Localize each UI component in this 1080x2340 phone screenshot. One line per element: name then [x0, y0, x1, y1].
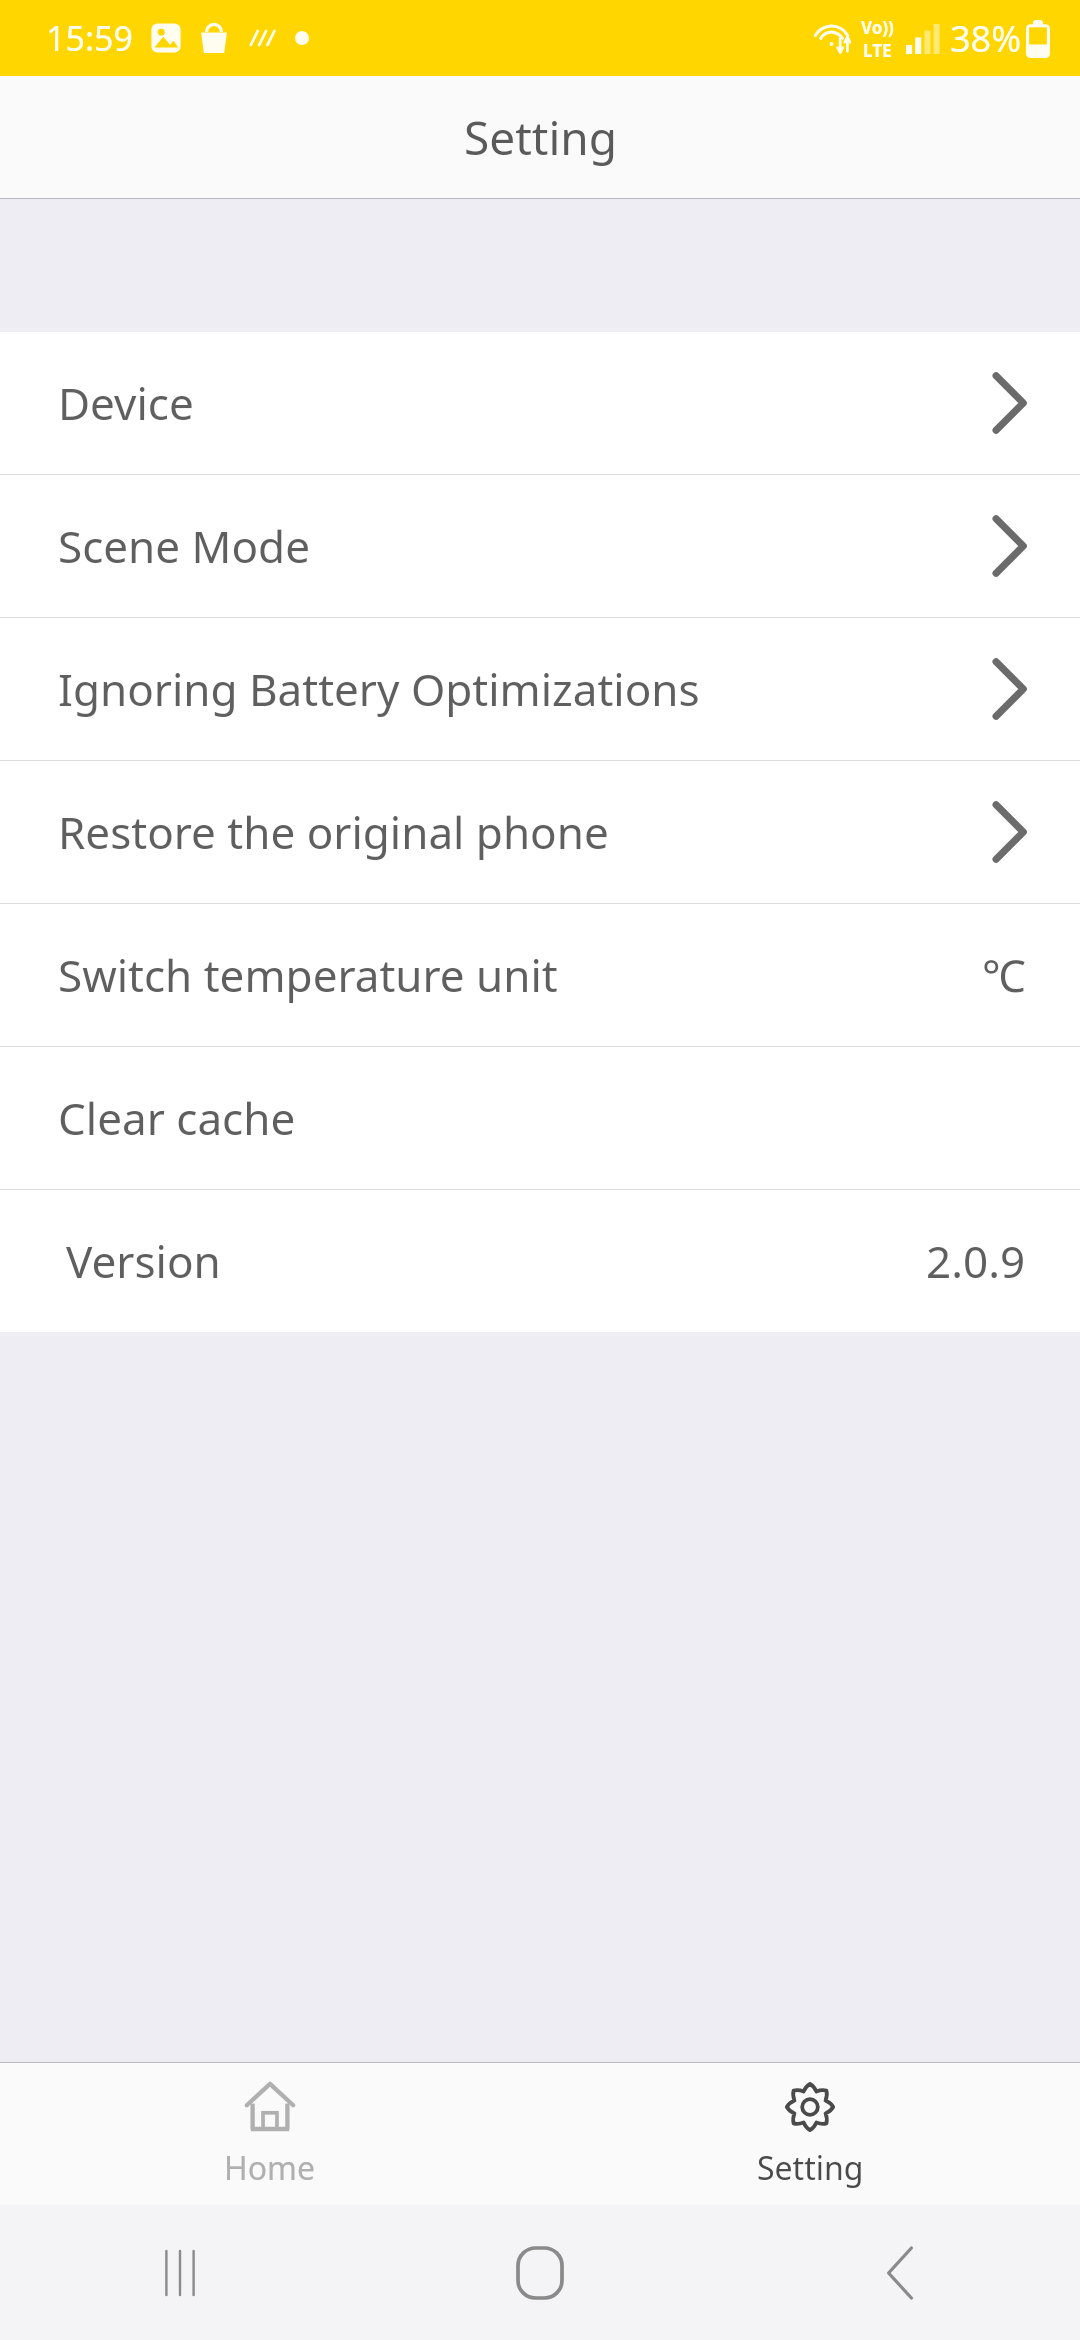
button[interactable]: Switch temperature unit [0, 904, 1080, 1046]
button[interactable]: Clear cache [0, 1047, 1080, 1189]
button[interactable]: Home [0, 2063, 540, 2205]
button[interactable]: Ignoring Battery Optimizations [0, 618, 1080, 760]
staticText: ℃ [982, 945, 1026, 1005]
button[interactable]: Device [0, 332, 1080, 474]
staticText: 2.0.9 [926, 1231, 1026, 1291]
staticText: LTE [863, 39, 892, 62]
button[interactable]: Back [720, 2205, 1080, 2340]
button[interactable]: Setting [540, 2063, 1080, 2205]
staticText: Setting [464, 106, 617, 169]
staticText: Setting [757, 2146, 864, 2190]
staticText: Ignoring Battery Optimizations [58, 659, 992, 719]
staticText: 15:59 [46, 15, 133, 61]
staticText: Device [58, 373, 992, 433]
button[interactable]: Version [0, 1190, 1080, 1332]
staticText: Scene Mode [58, 516, 992, 576]
button[interactable]: Scene Mode [0, 475, 1080, 617]
staticText: Restore the original phone [58, 802, 992, 862]
staticText: Version [66, 1231, 926, 1291]
staticText: Home [224, 2146, 316, 2190]
button[interactable]: Recents [0, 2205, 360, 2340]
staticText: Clear cache [58, 1088, 1026, 1148]
button[interactable]: Restore the original phone [0, 761, 1080, 903]
staticText: Vo)) [861, 16, 894, 39]
staticText: 38% [950, 14, 1022, 63]
button[interactable]: Home [360, 2205, 720, 2340]
staticText: Switch temperature unit [58, 945, 982, 1005]
